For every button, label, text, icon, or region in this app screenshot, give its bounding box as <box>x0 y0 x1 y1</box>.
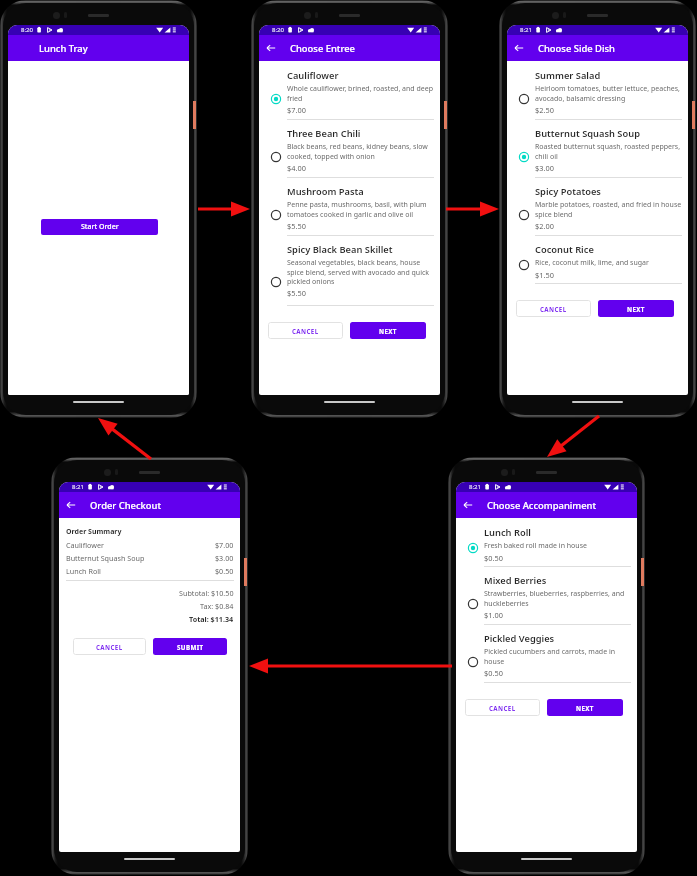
staticText: Cauliflower <box>66 540 104 550</box>
staticText: $0.50 <box>215 566 234 576</box>
staticText: Butternut Squash Soup <box>535 127 640 140</box>
button[interactable]: Spicy Black Bean Skillet <box>259 236 440 306</box>
button[interactable]: NEXT <box>547 699 623 716</box>
button[interactable]: Pickled Veggies <box>456 625 637 683</box>
staticText: $3.00 <box>215 553 234 563</box>
staticText: Mushroom Pasta <box>287 185 364 198</box>
staticText: 8:20 <box>272 26 284 34</box>
button[interactable]: NEXT <box>598 300 674 317</box>
staticText: Tax: $0.84 <box>200 601 234 611</box>
staticText: Spicy Potatoes <box>535 185 601 198</box>
button[interactable]: NEXT <box>350 322 426 339</box>
staticText: $7.00 <box>215 540 234 550</box>
staticText: Marble potatoes, roasted, and fried in h… <box>535 200 682 219</box>
staticText: Three Bean Chili <box>287 127 361 140</box>
staticText: Cauliflower <box>287 69 339 82</box>
staticText: NEXT <box>627 305 645 313</box>
staticText: 8:21 <box>520 26 532 34</box>
staticText: Summer Salad <box>535 69 601 82</box>
button[interactable]: Cauliflower <box>259 62 440 120</box>
staticText: $7.00 <box>287 105 306 115</box>
staticText: CANCEL <box>292 327 319 335</box>
staticText: Whole cauliflower, brined, roasted, and … <box>287 84 434 103</box>
staticText: NEXT <box>576 704 594 712</box>
staticText: $1.50 <box>535 270 554 280</box>
button[interactable]: CANCEL <box>268 322 343 339</box>
staticText: $0.50 <box>484 553 503 563</box>
staticText: 8:20 <box>21 26 33 34</box>
button[interactable]: SUBMIT <box>153 638 227 655</box>
staticText: Order Checkout <box>90 499 162 512</box>
staticText: Choose Entree <box>290 42 356 55</box>
button[interactable]: CANCEL <box>516 300 591 317</box>
staticText: CANCEL <box>96 643 123 651</box>
staticText: Penne pasta, mushrooms, basil, with plum… <box>287 200 434 219</box>
staticText: Subtotal: $10.50 <box>179 588 234 598</box>
staticText: Spicy Black Bean Skillet <box>287 243 393 256</box>
button[interactable]: Spicy Potatoes <box>507 178 688 236</box>
staticText: 8:21 <box>72 483 84 491</box>
staticText: Pickled Veggies <box>484 632 555 645</box>
staticText: CANCEL <box>489 704 516 712</box>
staticText: SUBMIT <box>177 643 204 651</box>
staticText: Lunch Roll <box>66 566 101 576</box>
button[interactable]: Back <box>263 40 279 56</box>
staticText: $4.00 <box>287 163 306 173</box>
staticText: Lunch Roll <box>484 526 531 539</box>
button[interactable]: CANCEL <box>73 638 146 655</box>
staticText: Choose Accompaniment <box>487 499 597 512</box>
staticText: $5.50 <box>287 221 306 231</box>
staticText: Order Summary <box>66 527 122 537</box>
staticText: Choose Side Dish <box>538 42 615 55</box>
button[interactable]: Three Bean Chili <box>259 120 440 178</box>
staticText: Seasonal vegetables, black beans, house … <box>287 258 434 286</box>
staticText: Pickled cucumbers and carrots, made in h… <box>484 647 631 666</box>
staticText: 8:21 <box>469 483 481 491</box>
staticText: Total: $11.34 <box>189 614 234 624</box>
staticText: Mixed Berries <box>484 574 547 587</box>
staticText: $3.00 <box>535 163 554 173</box>
staticText: Strawberries, blueberries, raspberries, … <box>484 589 631 608</box>
staticText: CANCEL <box>540 305 567 313</box>
button[interactable]: Lunch Roll <box>456 519 637 567</box>
staticText: Rice, coconut milk, lime, and sugar <box>535 258 649 268</box>
staticText: $2.00 <box>535 221 554 231</box>
staticText: Heirloom tomatoes, butter lettuce, peach… <box>535 84 682 103</box>
staticText: $5.50 <box>287 288 306 298</box>
staticText: Black beans, red beans, kidney beans, sl… <box>287 142 434 161</box>
button[interactable]: Butternut Squash Soup <box>507 120 688 178</box>
staticText: Start Order <box>81 222 119 232</box>
staticText: $1.00 <box>484 610 503 620</box>
staticText: Fresh baked roll made in house <box>484 541 587 551</box>
staticText: $2.50 <box>535 105 554 115</box>
staticText: Coconut Rice <box>535 243 594 256</box>
staticText: NEXT <box>379 327 397 335</box>
button[interactable]: Mixed Berries <box>456 567 637 625</box>
staticText: Lunch Tray <box>39 42 88 55</box>
button[interactable]: Mushroom Pasta <box>259 178 440 236</box>
button[interactable]: Summer Salad <box>507 62 688 120</box>
button[interactable]: Coconut Rice <box>507 236 688 284</box>
button[interactable]: CANCEL <box>465 699 540 716</box>
staticText: $0.50 <box>484 668 503 678</box>
button[interactable]: Back <box>511 40 527 56</box>
button[interactable]: Back <box>460 497 476 513</box>
staticText: Roasted butternut squash, roasted pepper… <box>535 142 682 161</box>
button[interactable]: Back <box>63 497 79 513</box>
staticText: Butternut Squash Soup <box>66 553 145 563</box>
button[interactable]: Start Order <box>41 219 158 235</box>
